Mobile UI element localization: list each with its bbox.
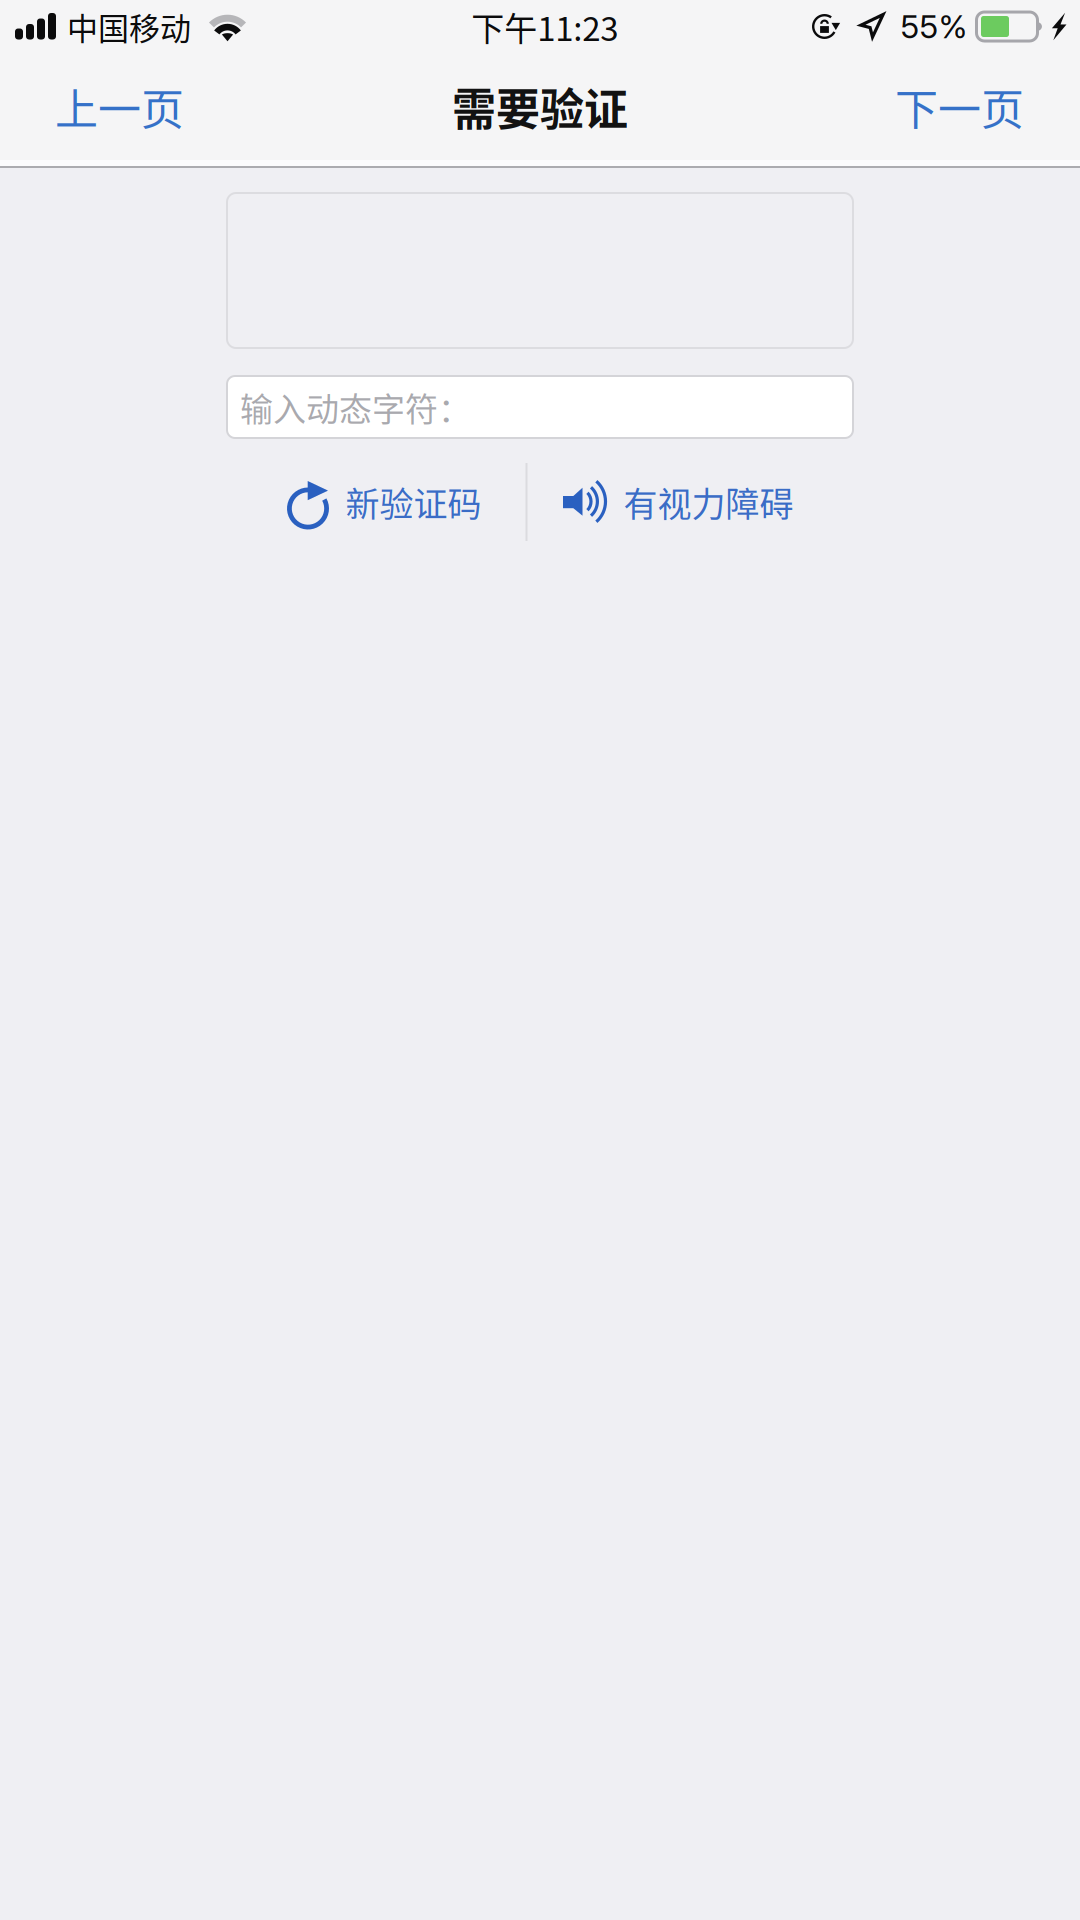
- staticText: 上一页: [55, 75, 184, 138]
- button[interactable]: 下一页: [869, 55, 1080, 157]
- staticText: 55%: [900, 7, 967, 46]
- button[interactable]: 上一页: [0, 55, 210, 157]
- staticText: 下午11:23: [471, 3, 618, 50]
- button[interactable]: 新验证码: [286, 460, 481, 544]
- staticText: 中国移动: [67, 4, 191, 49]
- button[interactable]: 有视力障碍: [562, 460, 793, 544]
- staticText: 需要验证: [452, 75, 628, 138]
- staticText: 输入动态字符：: [240, 383, 471, 431]
- staticText: 新验证码: [345, 477, 481, 527]
- staticText: 有视力障碍: [623, 477, 793, 527]
- button[interactable]: 输入动态字符：: [227, 376, 853, 438]
- staticText: 下一页: [895, 75, 1024, 138]
